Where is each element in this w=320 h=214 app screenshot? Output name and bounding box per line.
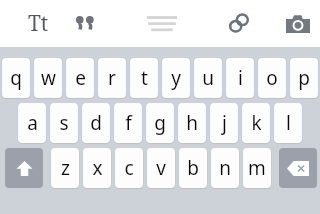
button[interactable]: v	[147, 148, 175, 188]
staticText: x	[92, 155, 103, 181]
button[interactable]: Insert image	[280, 6, 316, 40]
button[interactable]: s	[50, 103, 78, 143]
staticText: t	[141, 65, 148, 91]
staticText: d	[90, 110, 102, 136]
button[interactable]: p	[290, 58, 318, 98]
staticText: b	[187, 155, 199, 181]
staticText: y	[171, 65, 181, 91]
button[interactable]: w	[34, 58, 62, 98]
staticText: j	[222, 110, 227, 136]
button[interactable]: b	[179, 148, 207, 188]
staticText: u	[202, 65, 214, 91]
staticText: z	[61, 155, 70, 181]
button[interactable]: Horizontal rule	[140, 6, 184, 40]
button[interactable]: Backspace	[279, 148, 317, 188]
button[interactable]: Block quote	[66, 4, 104, 40]
staticText: n	[219, 155, 231, 181]
button[interactable]: l	[274, 103, 302, 143]
button[interactable]: e	[66, 58, 94, 98]
button[interactable]: x	[83, 148, 111, 188]
staticText: i	[238, 65, 243, 91]
staticText: a	[27, 110, 38, 136]
staticText: g	[154, 110, 166, 136]
button[interactable]: y	[162, 58, 190, 98]
button[interactable]: d	[82, 103, 110, 143]
button[interactable]: n	[211, 148, 239, 188]
button[interactable]: j	[210, 103, 238, 143]
button[interactable]: a	[18, 103, 46, 143]
staticText: Tt	[28, 9, 49, 38]
staticText: r	[108, 65, 116, 91]
staticText: h	[186, 110, 198, 136]
button[interactable]: Insert link	[220, 6, 258, 40]
button[interactable]: o	[258, 58, 286, 98]
staticText: e	[75, 65, 86, 91]
button[interactable]: c	[115, 148, 143, 188]
button[interactable]: Shift	[5, 148, 43, 188]
staticText: l	[286, 110, 291, 136]
staticText: o	[266, 65, 278, 91]
staticText: q	[10, 65, 22, 91]
button[interactable]: r	[98, 58, 126, 98]
button[interactable]: f	[114, 103, 142, 143]
button[interactable]: m	[243, 148, 271, 188]
staticText: s	[59, 110, 69, 136]
button[interactable]: i	[226, 58, 254, 98]
button[interactable]: g	[146, 103, 174, 143]
button[interactable]: h	[178, 103, 206, 143]
staticText: v	[156, 155, 166, 181]
staticText: p	[298, 65, 310, 91]
staticText: f	[125, 110, 132, 136]
button[interactable]: t	[130, 58, 158, 98]
button[interactable]: k	[242, 103, 270, 143]
staticText: c	[124, 155, 134, 181]
staticText: w	[41, 65, 56, 91]
button[interactable]: u	[194, 58, 222, 98]
button[interactable]: z	[51, 148, 79, 188]
staticText: m	[248, 155, 266, 181]
button[interactable]: Tt	[18, 6, 58, 40]
button[interactable]: q	[2, 58, 30, 98]
staticText: k	[251, 110, 262, 136]
